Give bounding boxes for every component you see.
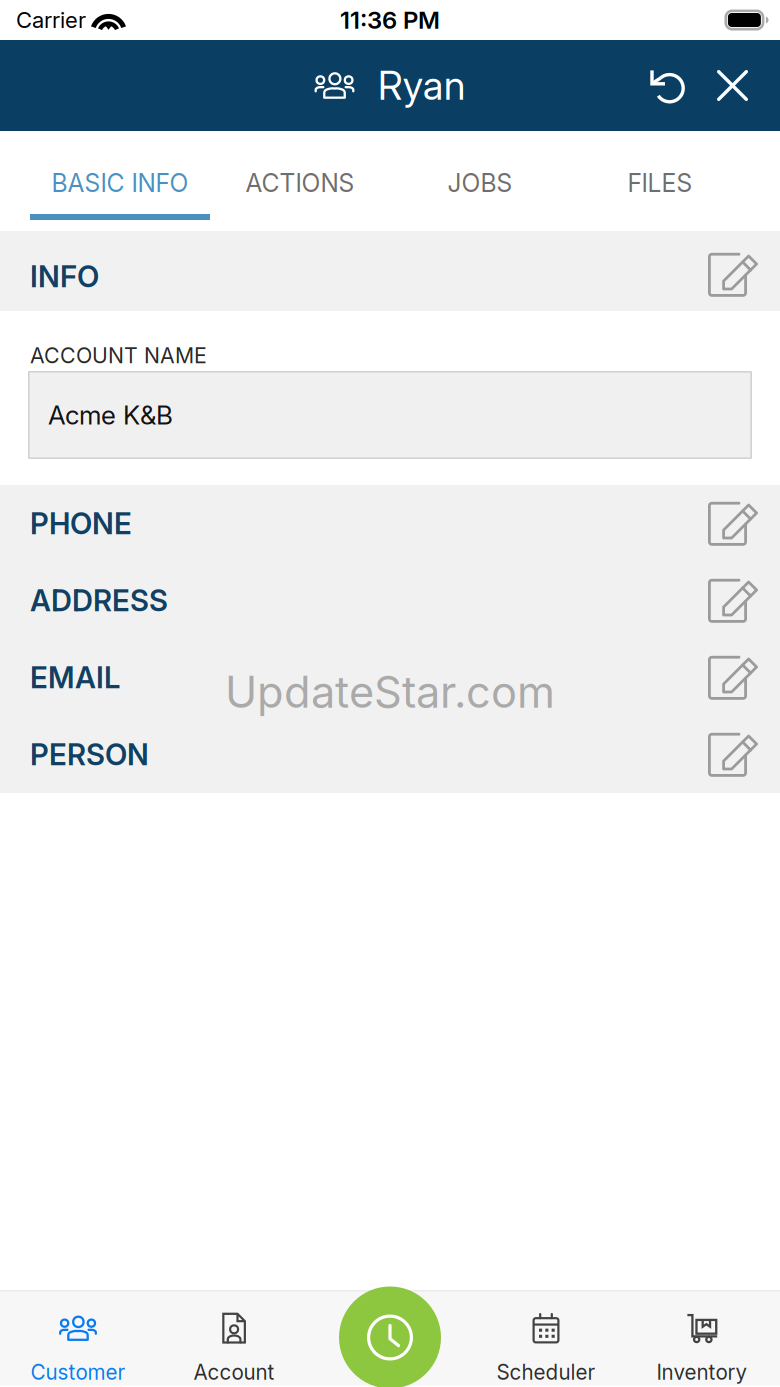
staticText: UpdateStar.com	[225, 666, 555, 718]
staticText: Customer	[30, 1360, 125, 1385]
button[interactable]: ADDRESS	[0, 562, 780, 639]
staticText: EMAIL	[30, 660, 120, 695]
staticText: ACCOUNT NAME	[30, 343, 207, 368]
button[interactable]: Time clock	[339, 1286, 441, 1387]
button[interactable]: PERSON	[0, 716, 780, 793]
button[interactable]: ACTIONS	[210, 131, 390, 231]
staticText: FILES	[627, 168, 692, 198]
button[interactable]: JOBS	[390, 131, 570, 231]
button[interactable]: Account	[156, 1291, 312, 1386]
staticText: Ryan	[378, 62, 466, 109]
button[interactable]: Inventory	[624, 1291, 780, 1386]
staticText: ADDRESS	[30, 583, 168, 618]
button[interactable]: Customer	[0, 1291, 156, 1386]
staticText: Scheduler	[496, 1360, 595, 1385]
staticText: INFO	[30, 259, 99, 294]
button[interactable]: INFO	[0, 231, 780, 311]
staticText: Account	[193, 1360, 274, 1385]
staticText: Acme K&B	[48, 399, 173, 431]
button[interactable]	[312, 1291, 468, 1386]
staticText: ACTIONS	[245, 168, 354, 198]
staticText: 11:36 PM	[340, 5, 440, 34]
staticText: BASIC INFO	[51, 168, 188, 198]
button[interactable]: BASIC INFO	[30, 131, 210, 231]
button[interactable]: PHONE	[0, 485, 780, 562]
button[interactable]: Undo	[637, 54, 696, 117]
staticText: JOBS	[447, 168, 512, 198]
button[interactable]: FILES	[570, 131, 750, 231]
button[interactable]: EMAIL	[0, 639, 780, 716]
staticText: Inventory	[656, 1360, 747, 1385]
staticText: PERSON	[30, 737, 149, 772]
button[interactable]: Scheduler	[468, 1291, 624, 1386]
staticText: Carrier	[16, 7, 86, 33]
button[interactable]: Close	[705, 54, 760, 117]
staticText: PHONE	[30, 506, 132, 541]
